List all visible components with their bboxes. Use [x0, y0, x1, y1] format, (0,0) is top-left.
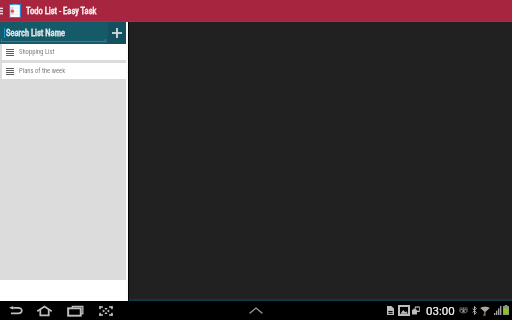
button[interactable]: Back [5, 301, 25, 320]
staticText: 03:00 [426, 304, 455, 317]
button[interactable]: Add list [108, 22, 126, 44]
staticText: Plans of the week [19, 67, 66, 75]
button[interactable]: Screenshot [96, 301, 116, 320]
button[interactable]: Recents [65, 301, 85, 320]
button[interactable]: Home [34, 301, 54, 320]
button[interactable]: Plans of the week [2, 63, 126, 79]
staticText: Shopping List [19, 48, 55, 56]
staticText: Search List Name [6, 28, 66, 38]
button[interactable]: Shopping List [2, 44, 126, 60]
button[interactable]: Menu [0, 0, 4, 22]
staticText: Todo List - Easy Task [26, 6, 97, 16]
button[interactable]: Search List Name [0, 22, 108, 44]
button[interactable]: Show notifications [247, 301, 265, 320]
